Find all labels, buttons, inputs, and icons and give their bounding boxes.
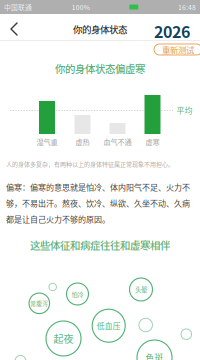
staticText: 平均 <box>176 104 192 116</box>
staticText: 偏寒：偏寒的意思就是怕冷、体内阳气不足、火力不够，不易出汗。熬夜、饮冷、纵欲、久… <box>6 181 190 225</box>
button[interactable]: Back <box>2 16 26 42</box>
staticText: 这些体征和病症往往和虚寒相伴 <box>30 237 170 253</box>
staticText: 100% <box>72 2 90 12</box>
button[interactable]: 重新测试 <box>154 44 200 55</box>
staticText: 中国联通 <box>4 2 32 12</box>
staticText: 怕冷 <box>71 290 83 298</box>
staticText: 头晕 <box>135 285 147 294</box>
staticText: 虚寒 <box>145 136 159 147</box>
staticText: 血气不通 <box>103 136 131 147</box>
staticText: 起夜 <box>53 331 73 346</box>
staticText: 你的身体状态 <box>73 22 127 36</box>
staticText: 16:48 <box>178 2 196 12</box>
staticText: 湿气重 <box>36 136 57 147</box>
staticText: 重新测试 <box>162 43 194 56</box>
staticText: 虚热 <box>75 136 89 147</box>
staticText: 常腹泻 <box>30 299 48 307</box>
staticText: 2026 <box>154 19 190 43</box>
staticText: 人的身体多复杂，有两种以上的身体特征属正常现象不用担心。 <box>6 160 174 168</box>
staticText: 低血压 <box>97 320 121 331</box>
staticText: 色斑 <box>145 351 163 360</box>
staticText: 你的身体状态偏虚寒 <box>55 61 145 76</box>
